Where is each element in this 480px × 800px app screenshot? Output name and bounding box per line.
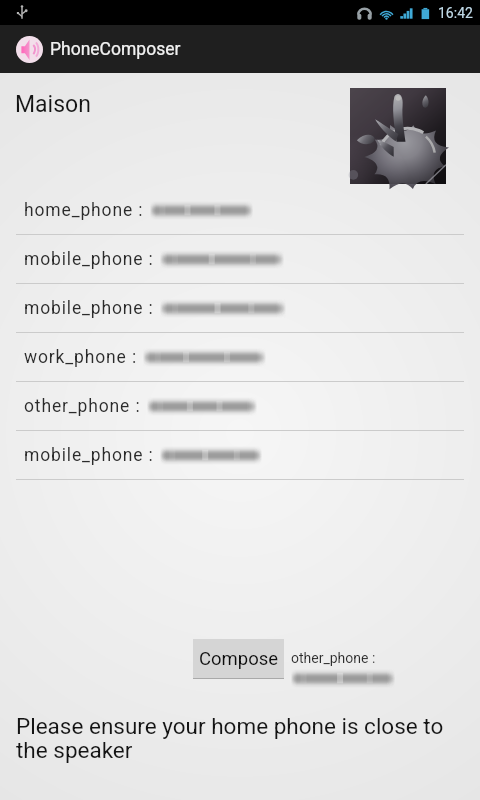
staticText: work_phone :	[24, 347, 137, 368]
staticText: Maison	[15, 91, 91, 118]
button[interactable]: other_phone :	[0, 382, 480, 431]
button[interactable]: mobile_phone :	[0, 284, 480, 333]
staticText: home_phone :	[24, 200, 144, 221]
staticText: mobile_phone :	[24, 298, 154, 319]
button[interactable]: mobile_phone :	[0, 235, 480, 284]
button[interactable]: Compose	[193, 639, 284, 679]
button[interactable]: home_phone :	[0, 186, 480, 235]
staticText: PhoneComposer	[50, 39, 181, 60]
staticText: Please ensure your home phone is close t…	[16, 713, 444, 763]
staticText: mobile_phone :	[24, 445, 154, 466]
button[interactable]: work_phone :	[0, 333, 480, 382]
other: App icon	[16, 36, 43, 63]
staticText: other_phone :	[24, 396, 141, 417]
staticText: other_phone :	[291, 650, 376, 666]
button[interactable]: mobile_phone :	[0, 431, 480, 480]
staticText: Compose	[199, 648, 279, 670]
staticText: mobile_phone :	[24, 249, 154, 270]
staticText: 16:42	[438, 5, 473, 21]
